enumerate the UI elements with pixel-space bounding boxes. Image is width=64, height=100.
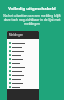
button[interactable] xyxy=(7,53,39,57)
staticText: Meldingen xyxy=(9,33,24,37)
staticText: Volledig uitgeschakeld xyxy=(8,6,56,12)
button[interactable] xyxy=(7,81,39,85)
button[interactable] xyxy=(7,49,39,53)
button[interactable] xyxy=(7,77,39,81)
button[interactable] xyxy=(7,69,39,73)
button[interactable]: Meldingen xyxy=(7,31,39,39)
button[interactable] xyxy=(7,41,39,45)
button[interactable] xyxy=(7,57,39,61)
button[interactable] xyxy=(7,73,39,77)
button[interactable] xyxy=(7,61,39,65)
button[interactable] xyxy=(7,85,39,89)
staticText: Na het uitzetten van een melding blijft … xyxy=(1,14,63,26)
button[interactable] xyxy=(7,65,39,69)
button[interactable] xyxy=(7,45,39,49)
